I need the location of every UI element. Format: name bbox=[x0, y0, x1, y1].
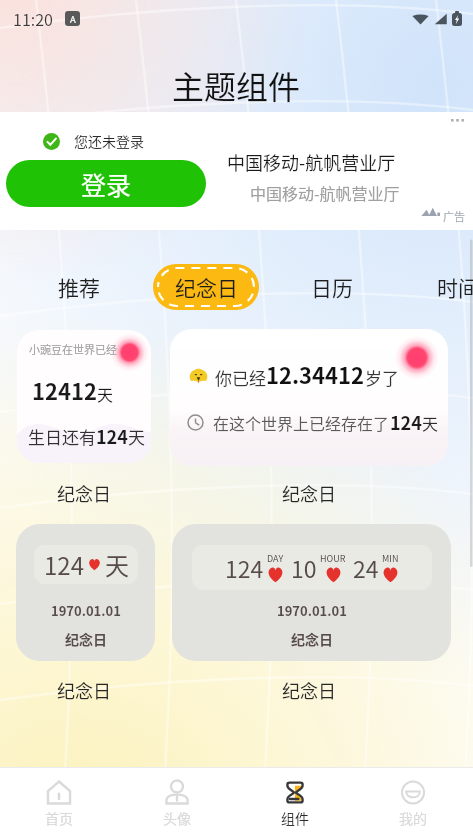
button[interactable]: 124 bbox=[16, 524, 155, 661]
staticText: 中国移动-航帆营业厅 bbox=[250, 181, 400, 204]
staticText: 124 bbox=[96, 423, 128, 449]
button[interactable]: 纪念日 bbox=[57, 677, 111, 703]
staticText: 小豌豆在世界已经 bbox=[29, 341, 117, 357]
staticText: 纪念日 bbox=[57, 480, 111, 506]
staticText: 头像 bbox=[163, 808, 191, 828]
staticText: 纪念日 bbox=[175, 272, 238, 302]
button[interactable]: 日历 bbox=[296, 264, 368, 310]
staticText: 纪念日 bbox=[291, 629, 333, 649]
staticText: DAY bbox=[267, 552, 284, 565]
button[interactable]: 你已经 bbox=[170, 329, 448, 466]
staticText: 12.34412 bbox=[266, 358, 365, 390]
button[interactable]: 纪念日 bbox=[57, 480, 111, 506]
other: 首页 bbox=[47, 780, 71, 805]
staticText: 我的 bbox=[399, 808, 427, 828]
staticText: 生日还有 bbox=[28, 424, 96, 449]
staticText: 您还未登录 bbox=[74, 131, 144, 151]
staticText: 日历 bbox=[311, 272, 353, 302]
staticText: 中国移动-航帆营业厅 bbox=[227, 149, 396, 175]
staticText: 12412 bbox=[32, 374, 97, 406]
button[interactable]: 124 bbox=[172, 524, 451, 661]
staticText: 1970.01.01 bbox=[51, 601, 121, 620]
staticText: 天 bbox=[128, 424, 145, 449]
button[interactable]: 推荐 bbox=[43, 264, 115, 310]
staticText: 10 bbox=[291, 551, 317, 584]
staticText: 在这个世界上已经存在了 bbox=[213, 411, 390, 434]
staticText: A bbox=[70, 13, 76, 25]
staticText: 主题组件 bbox=[172, 62, 301, 108]
staticText: 纪念日 bbox=[282, 480, 336, 506]
button[interactable]: 纪念日 bbox=[153, 264, 259, 310]
button[interactable]: 小豌豆在世界已经 bbox=[17, 330, 151, 463]
button[interactable]: 首页 bbox=[19, 780, 99, 838]
staticText: 1970.01.01 bbox=[277, 601, 347, 620]
staticText: 组件 bbox=[281, 808, 309, 828]
staticText: 天 bbox=[97, 382, 114, 405]
staticText: 广告 bbox=[443, 208, 465, 224]
staticText: 天 bbox=[105, 547, 129, 582]
staticText: 24 bbox=[353, 551, 379, 584]
staticText: 推荐 bbox=[58, 272, 100, 302]
other: 我的 bbox=[401, 780, 425, 805]
staticText: 天 bbox=[422, 411, 439, 434]
staticText: 124 bbox=[390, 409, 422, 435]
button[interactable]: 登录 bbox=[6, 160, 206, 207]
button[interactable]: 纪念日 bbox=[282, 677, 336, 703]
staticText: 登录 bbox=[81, 166, 132, 202]
other: 组件 bbox=[286, 781, 304, 804]
button[interactable]: 纪念日 bbox=[282, 480, 336, 506]
staticText: 11:20 bbox=[13, 7, 53, 30]
staticText: 时间 bbox=[437, 272, 473, 302]
staticText: 124 bbox=[225, 551, 264, 584]
staticText: 124 bbox=[44, 547, 84, 582]
staticText: MIN bbox=[382, 552, 399, 565]
other: 头像 bbox=[165, 780, 189, 805]
staticText: 纪念日 bbox=[282, 677, 336, 703]
button[interactable]: 头像 bbox=[137, 780, 217, 838]
staticText: 首页 bbox=[45, 808, 73, 828]
button[interactable]: 我的 bbox=[373, 780, 453, 838]
staticText: 纪念日 bbox=[65, 629, 107, 649]
staticText: HOUR bbox=[320, 552, 346, 565]
staticText: 纪念日 bbox=[57, 677, 111, 703]
staticText: 你已经 bbox=[215, 365, 266, 390]
button[interactable]: 组件 bbox=[255, 780, 335, 838]
staticText: 岁了 bbox=[365, 365, 399, 390]
button[interactable]: 时间 bbox=[422, 264, 473, 310]
